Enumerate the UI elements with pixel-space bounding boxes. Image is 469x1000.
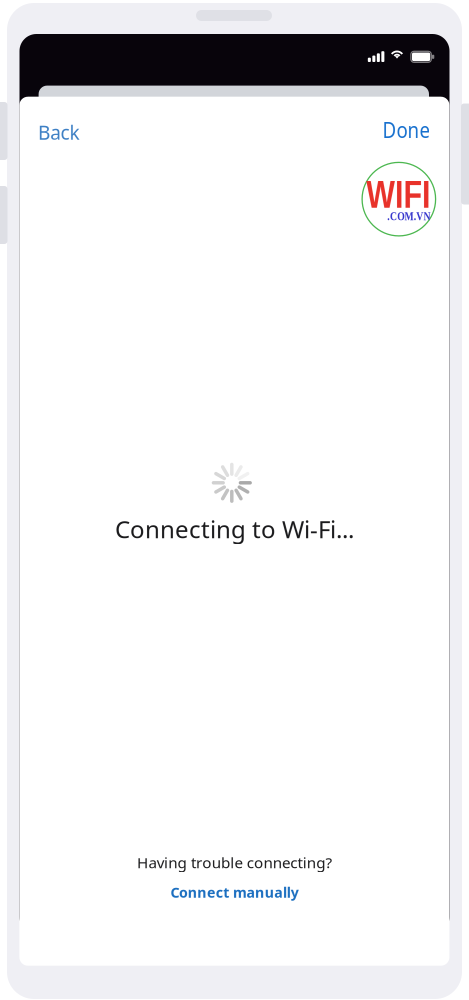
staticText: Having trouble connecting? xyxy=(140,853,328,872)
staticText: WIFI xyxy=(360,174,436,214)
button[interactable]: Connect manually xyxy=(156,879,313,905)
staticText: Back xyxy=(38,119,79,144)
staticText: Connecting to Wi-Fi... xyxy=(115,513,354,545)
staticText: Done xyxy=(382,117,430,142)
staticText: .COM.VN xyxy=(376,208,442,224)
button[interactable]: Done xyxy=(344,108,449,152)
button[interactable]: Back xyxy=(19,110,120,154)
staticText: Connect manually xyxy=(168,882,301,902)
